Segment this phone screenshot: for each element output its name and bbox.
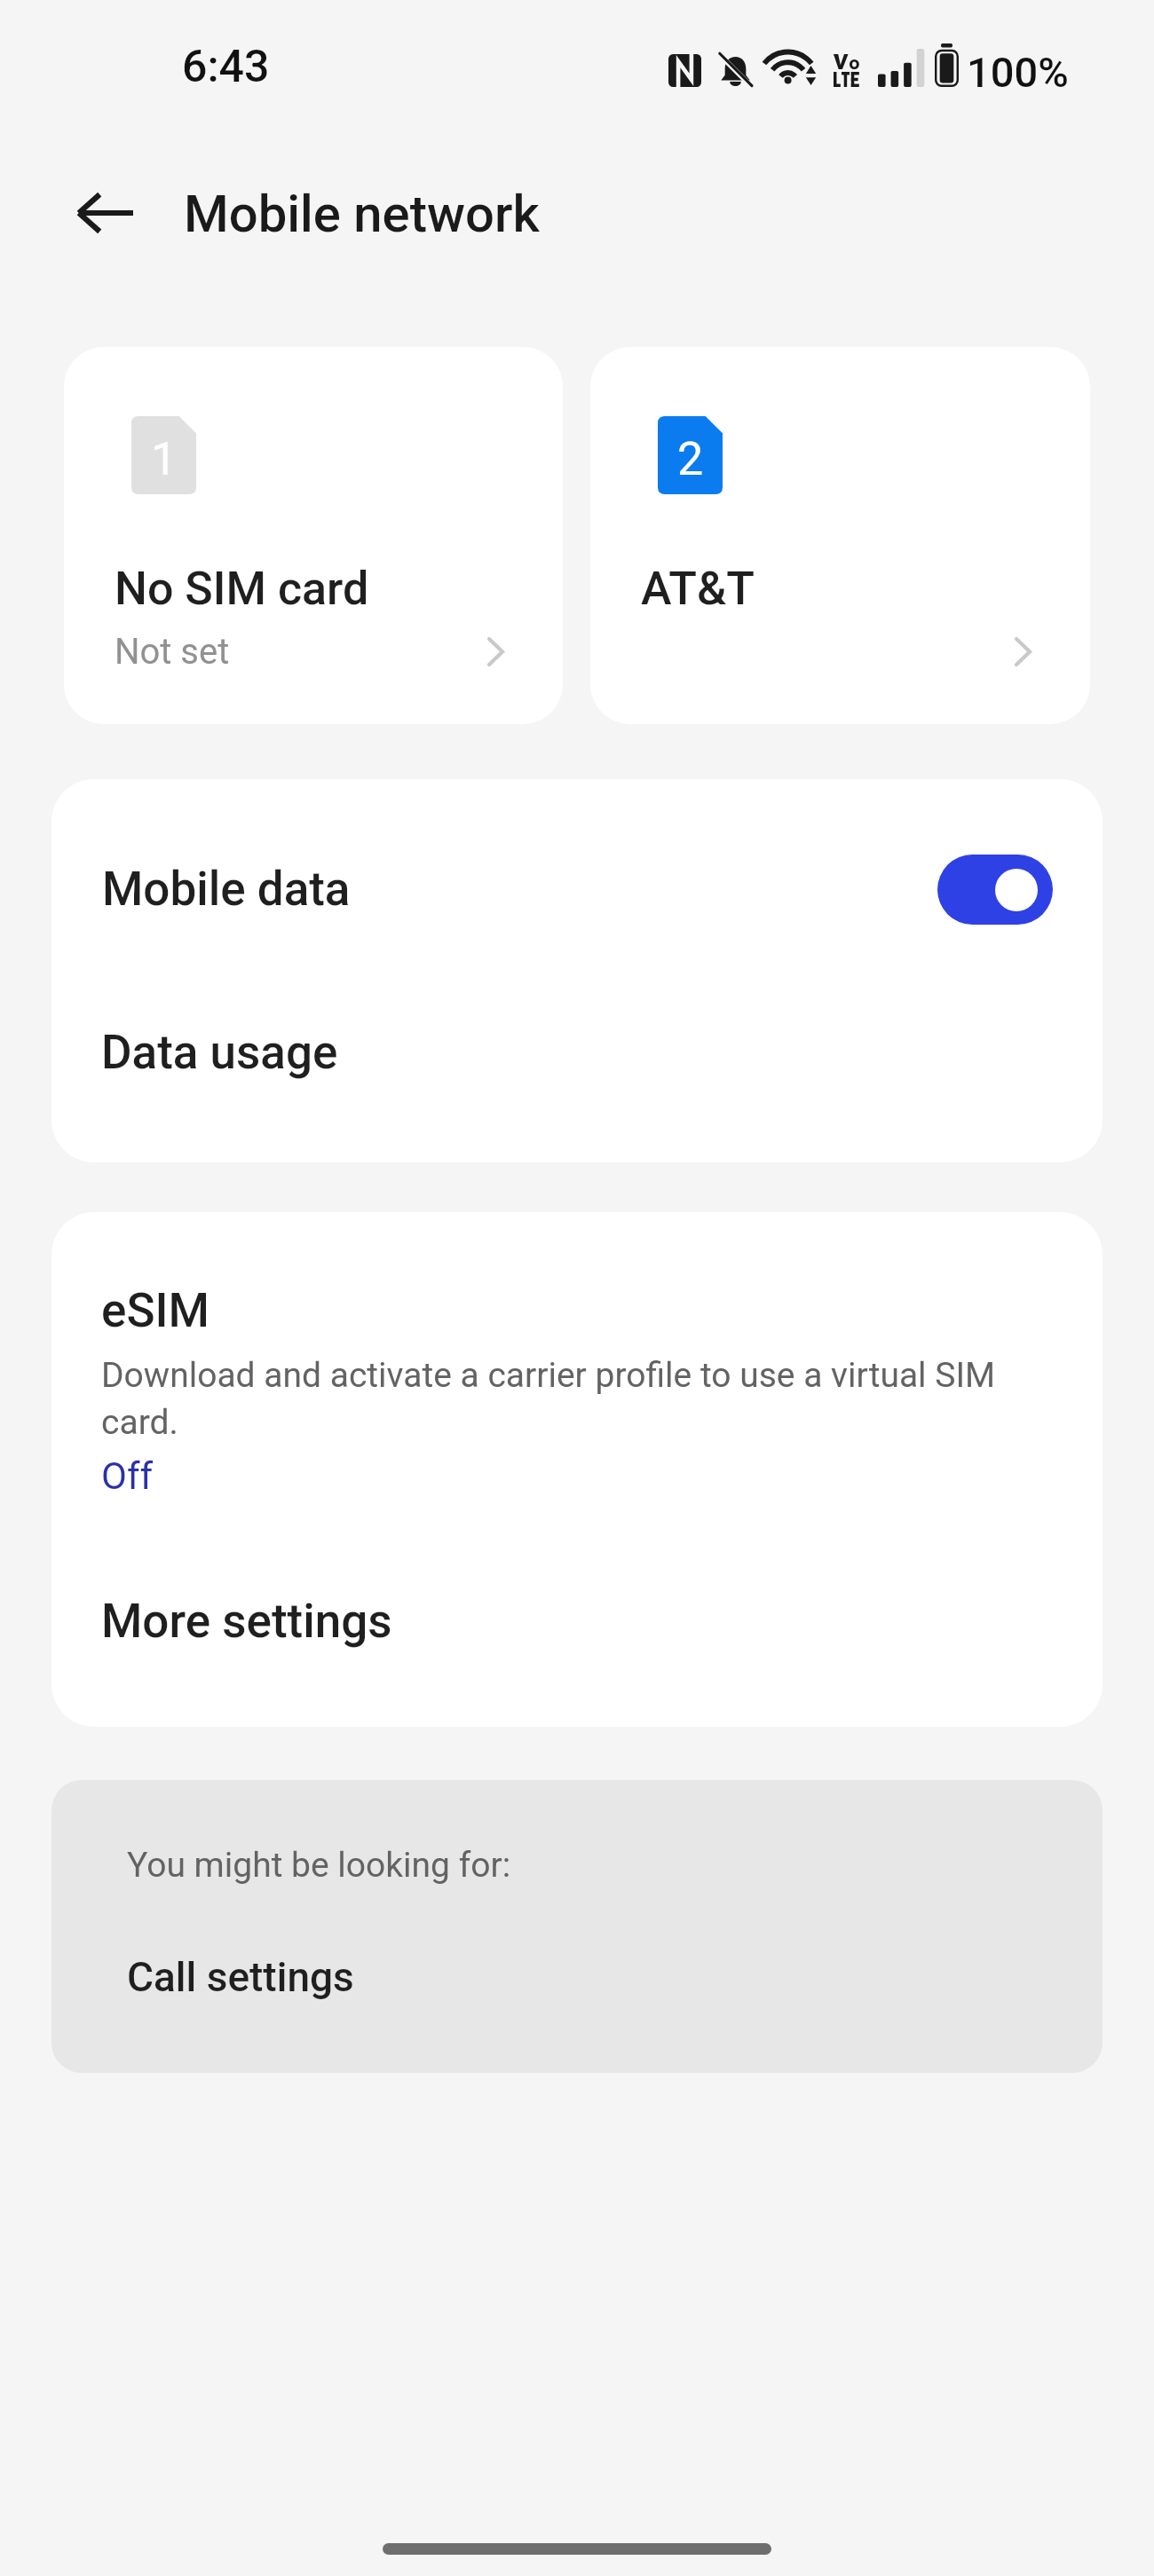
button[interactable]: More settings — [51, 1540, 1103, 1703]
staticText: 6:43 — [182, 41, 270, 93]
staticText: eSIM — [101, 1283, 209, 1338]
button[interactable]: eSIM — [51, 1212, 1103, 1540]
staticText: You might be looking for: — [127, 1845, 511, 1886]
staticText: AT&T — [641, 562, 755, 616]
staticText: 2 — [677, 432, 704, 486]
button[interactable]: Back — [64, 172, 146, 254]
staticText: Download and activate a carrier profile … — [101, 1350, 1044, 1444]
button[interactable]: Mobile data — [51, 807, 1103, 971]
button[interactable]: Data usage — [51, 971, 1103, 1134]
staticText: Not set — [115, 631, 230, 673]
staticText: Data usage — [101, 1025, 338, 1080]
button[interactable]: 2 — [590, 347, 1090, 724]
staticText: Mobile data — [102, 862, 937, 917]
button[interactable]: Mobile data toggle — [937, 855, 1053, 925]
staticText: 1 — [151, 432, 178, 486]
staticText: Mobile network — [184, 184, 540, 244]
staticText: More settings — [101, 1594, 392, 1649]
staticText: Off — [101, 1454, 154, 1498]
staticText: Call settings — [127, 1953, 354, 2001]
button[interactable]: 1 — [64, 347, 563, 724]
staticText: No SIM card — [115, 562, 369, 616]
staticText: 100% — [967, 48, 1069, 97]
button[interactable]: Call settings — [51, 1953, 1103, 2073]
